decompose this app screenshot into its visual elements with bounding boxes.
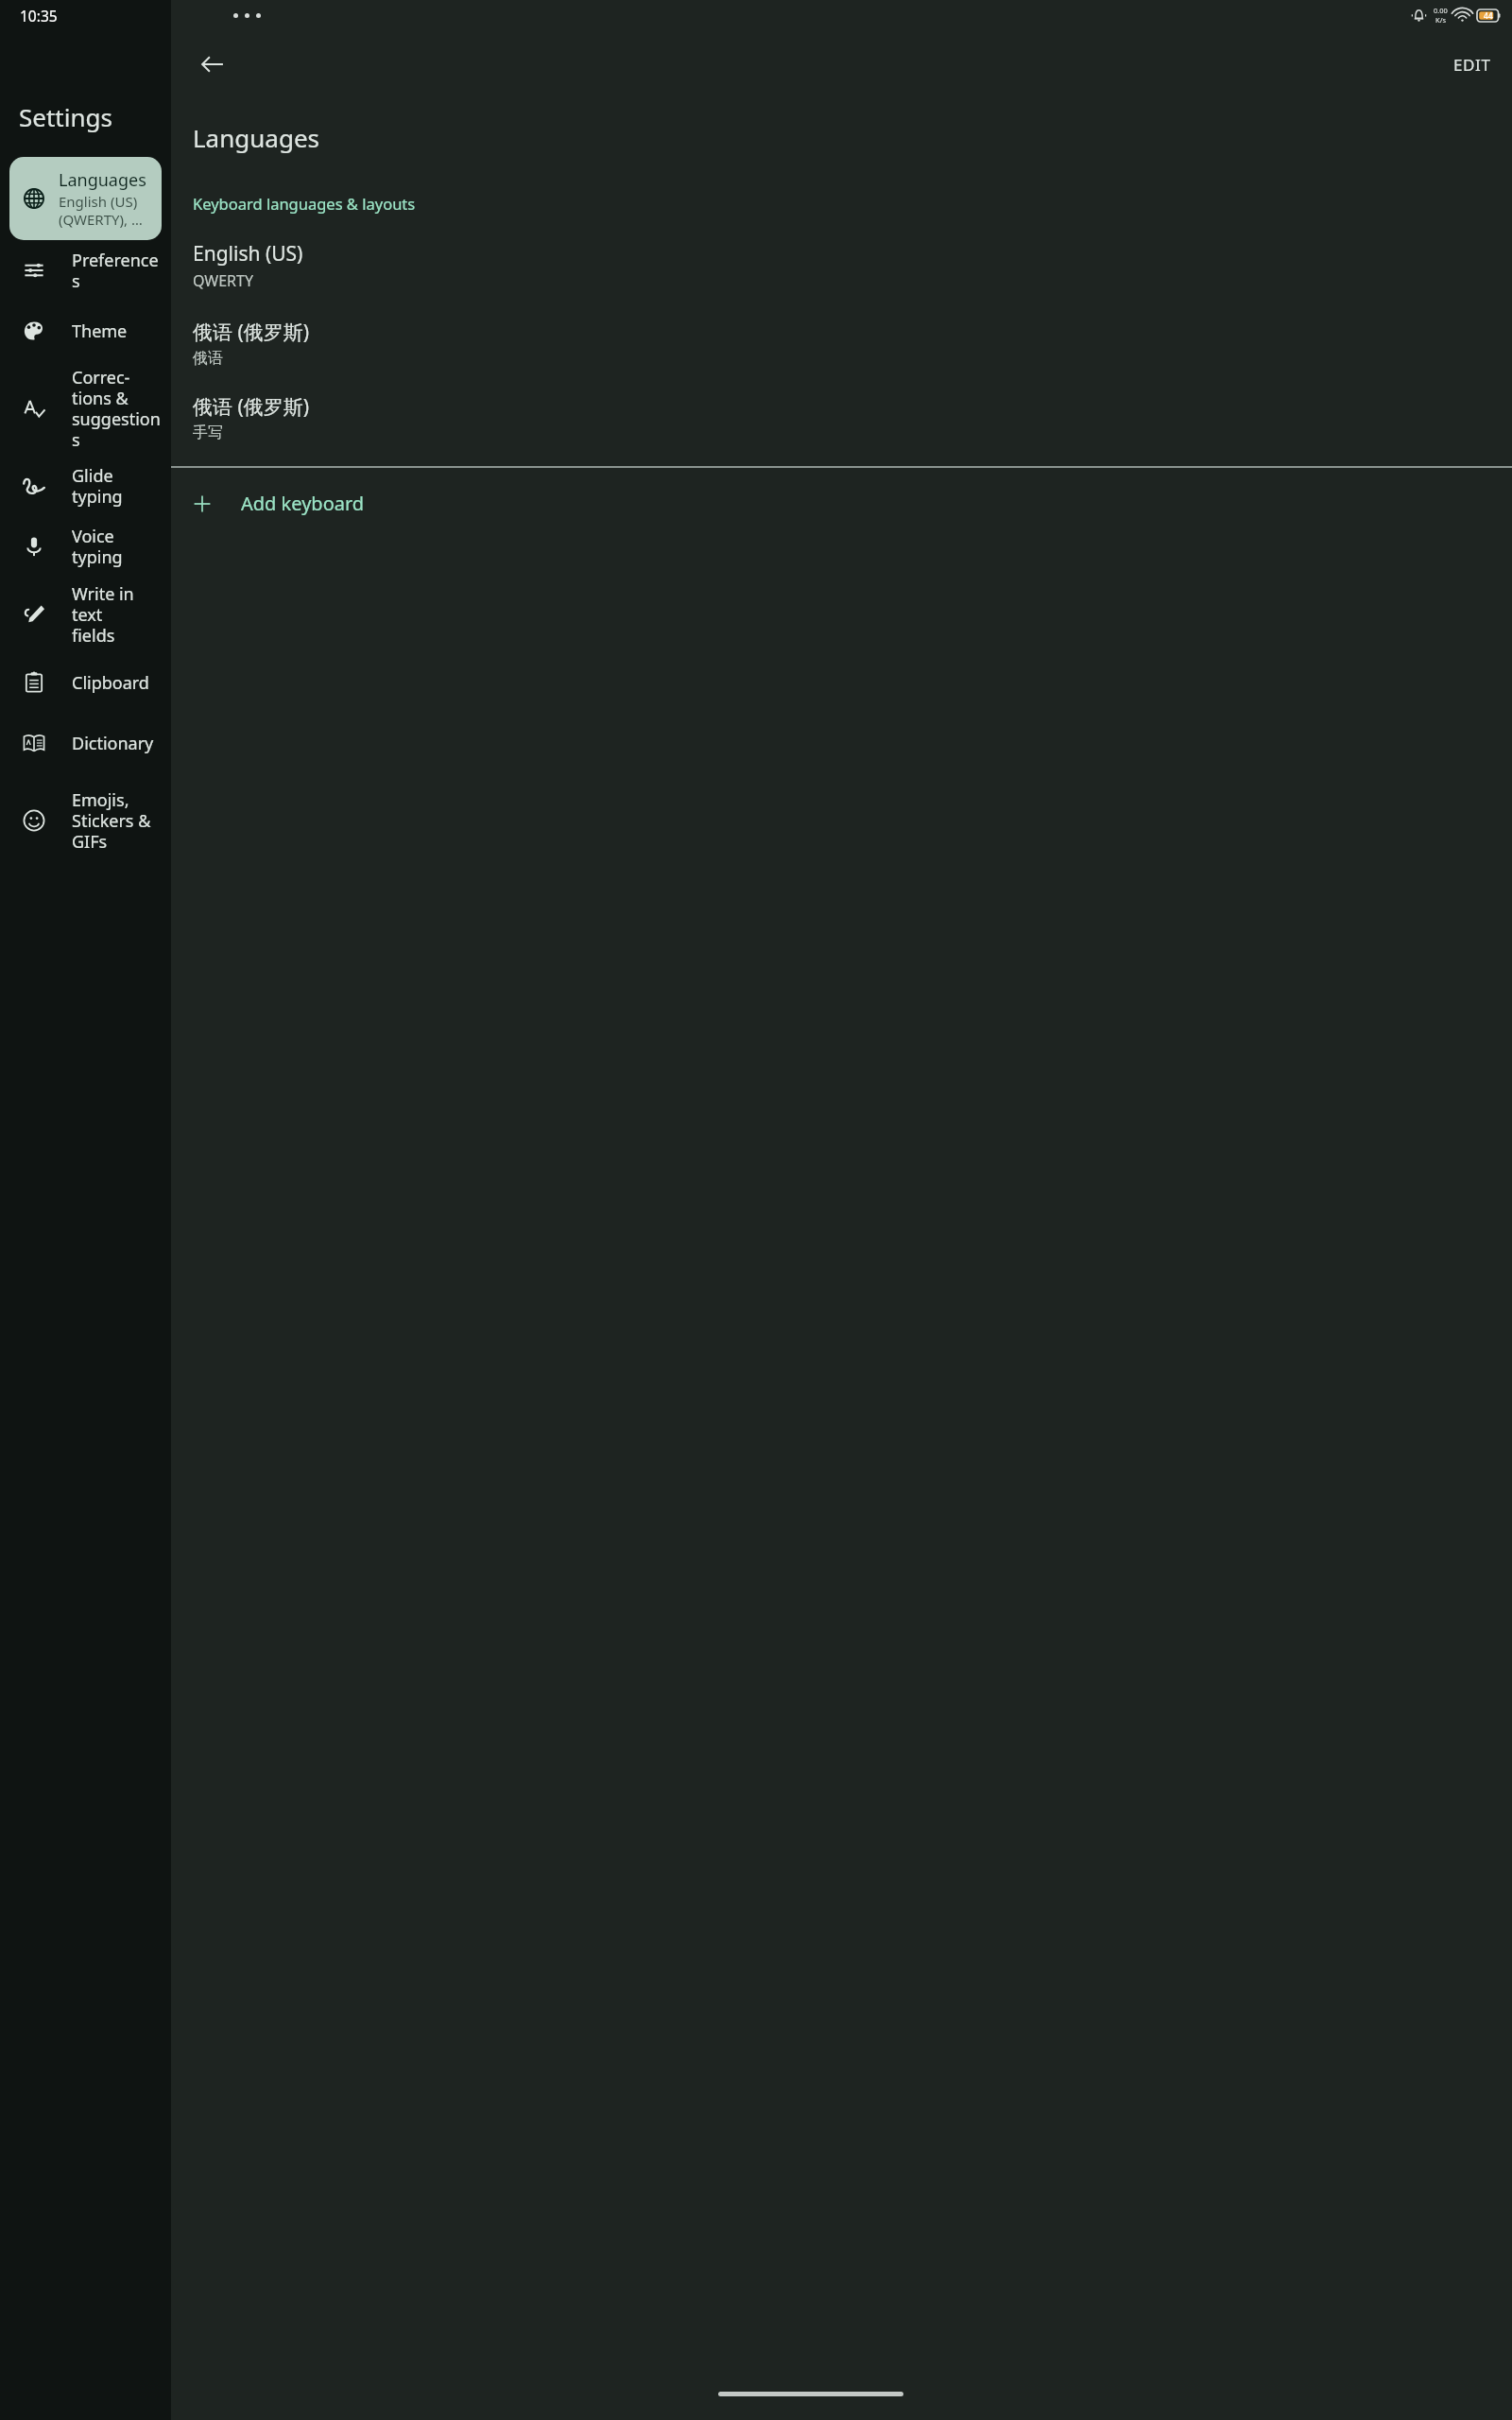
button[interactable]: Theme: [0, 301, 171, 361]
button[interactable]: Languages: [9, 157, 162, 240]
staticText: QWERTY: [193, 270, 254, 291]
staticText: 俄语 (俄罗斯): [193, 319, 310, 346]
staticText: Languages: [193, 121, 320, 154]
button[interactable]: Write in text fields: [0, 577, 171, 652]
staticText: Preferences: [72, 249, 165, 293]
button[interactable]: Glide typing: [0, 456, 171, 516]
button[interactable]: Correc- tions & suggestions: [0, 361, 171, 456]
staticText: 俄语: [193, 349, 223, 368]
button[interactable]: English (US): [171, 238, 1512, 293]
staticText: English (US) (QWERTY), 俄…: [59, 192, 156, 229]
button[interactable]: EDIT: [1446, 48, 1499, 81]
staticText: English (US): [193, 240, 303, 268]
staticText: 0.00: [1434, 6, 1448, 15]
staticText: Glide typing: [72, 464, 165, 509]
staticText: 手写: [193, 423, 223, 442]
button[interactable]: Voice typing: [0, 516, 171, 577]
staticText: Add keyboard: [241, 491, 365, 516]
staticText: Settings: [19, 100, 112, 133]
staticText: Clipboard: [72, 671, 149, 695]
staticText: Correc- tions & suggestions: [72, 366, 165, 452]
button[interactable]: Back: [192, 43, 233, 85]
button[interactable]: 俄语 (俄罗斯): [171, 317, 1512, 370]
staticText: Write in text fields: [72, 582, 165, 648]
staticText: K/s: [1435, 15, 1447, 25]
staticText: 10:35: [20, 6, 58, 26]
staticText: Keyboard languages & layouts: [193, 193, 416, 214]
button[interactable]: Preferences: [0, 240, 171, 301]
button[interactable]: Clipboard: [0, 652, 171, 713]
staticText: Emojis, Stickers & GIFs: [72, 788, 151, 854]
staticText: Dictionary: [72, 732, 154, 755]
button[interactable]: 俄语 (俄罗斯): [171, 391, 1512, 444]
button[interactable]: Dictionary: [0, 713, 171, 773]
staticText: 44: [1484, 10, 1493, 22]
staticText: Voice typing: [72, 525, 165, 569]
staticText: Theme: [72, 320, 128, 343]
staticText: 俄语 (俄罗斯): [193, 393, 310, 421]
button[interactable]: Emojis, Stickers & GIFs: [0, 773, 171, 868]
staticText: EDIT: [1453, 54, 1491, 76]
staticText: Languages: [59, 168, 146, 192]
button[interactable]: Add keyboard: [171, 468, 1512, 539]
